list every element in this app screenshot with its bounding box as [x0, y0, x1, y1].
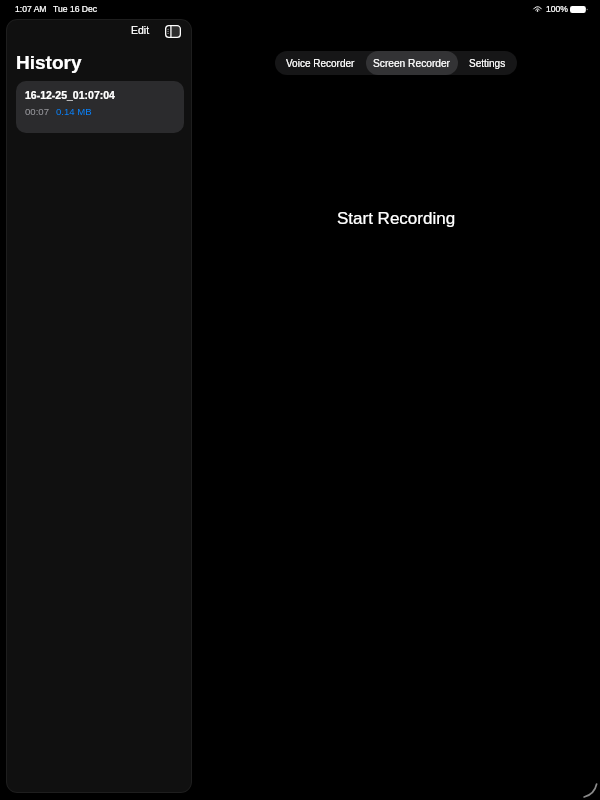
staticText: 100% [546, 4, 568, 14]
staticText: Voice Recorder [286, 58, 355, 69]
staticText: Settings [469, 58, 506, 69]
staticText: Tue 16 Dec [53, 4, 98, 14]
button[interactable]: Settings [458, 51, 517, 75]
staticText: History [16, 52, 82, 73]
button[interactable]: 16-12-25_01:07:04 [16, 81, 184, 133]
staticText: 16-12-25_01:07:04 [25, 89, 115, 101]
staticText: Edit [131, 24, 150, 36]
button[interactable]: Screen Recorder [366, 51, 458, 75]
staticText: 0.14 MB [56, 106, 92, 117]
staticText: 00:07 [25, 106, 50, 117]
button[interactable]: Toggle sidebar [162, 20, 184, 42]
staticText: Screen Recorder [373, 58, 451, 69]
staticText: Start Recording [337, 209, 456, 228]
staticText: 1:07 AM [15, 4, 47, 14]
button[interactable]: Edit [126, 21, 155, 39]
button[interactable]: Voice Recorder [275, 51, 366, 75]
